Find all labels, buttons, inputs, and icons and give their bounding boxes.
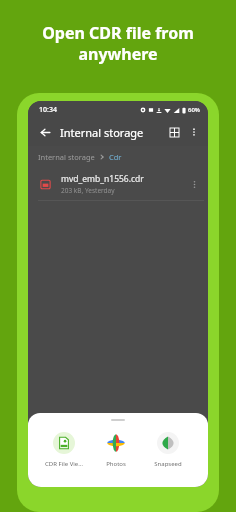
button[interactable]: Grid view <box>165 123 183 141</box>
button[interactable]: CDR File Vie… <box>38 432 90 468</box>
staticText: Open CDR file from anywhere <box>42 22 194 65</box>
button[interactable]: More options <box>185 123 203 141</box>
staticText: Snapseed <box>154 460 182 468</box>
button[interactable]: Snapseed <box>142 432 194 468</box>
button[interactable]: mvd_emb_n1556.cdr <box>28 167 208 200</box>
staticText: 60% <box>188 106 200 114</box>
button[interactable]: File options <box>186 176 202 192</box>
staticText: mvd_emb_n1556.cdr <box>61 173 144 185</box>
staticText: Internal storage <box>60 125 165 140</box>
button[interactable]: Photos <box>90 432 142 468</box>
staticText: CDR File Vie… <box>45 460 83 468</box>
button[interactable]: Back <box>36 123 54 141</box>
staticText: Photos <box>106 460 126 468</box>
button[interactable]: Cdr <box>109 152 122 162</box>
staticText: 10:34 <box>39 105 57 115</box>
staticText: 203 kB, Yesterday <box>61 186 115 195</box>
button[interactable]: Internal storage <box>38 152 95 162</box>
